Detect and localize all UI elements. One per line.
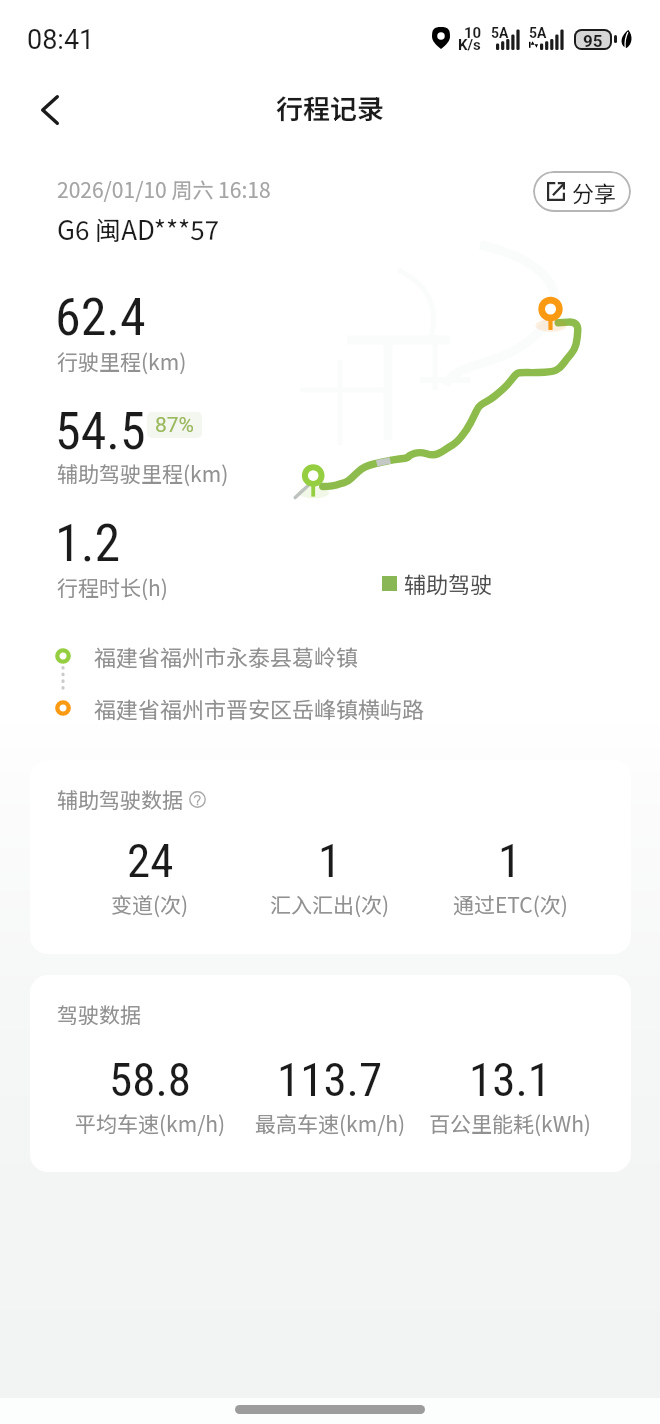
staticText: 58.8 — [109, 1052, 191, 1107]
staticText: 行驶里程(km) — [57, 346, 187, 376]
staticText: 福建省福州市晋安区岳峰镇横屿路 — [94, 692, 425, 723]
staticText: 分享 — [572, 176, 617, 208]
staticText: K/s — [458, 36, 481, 54]
staticText: 汇入汇出(次) — [270, 889, 390, 919]
staticText: 113.7 — [277, 1052, 383, 1107]
button[interactable]: 驾驶数据 — [30, 975, 631, 1172]
staticText: 5A — [491, 25, 509, 41]
button[interactable]: 福建省福州市晋安区岳峰镇横屿路 — [55, 692, 425, 723]
staticText: G6 闽AD***57 — [57, 210, 220, 248]
staticText: 54.5 — [55, 401, 146, 462]
button[interactable]: 辅助驾驶数据 — [30, 760, 631, 954]
staticText: 1 — [498, 833, 522, 888]
staticText: 行程记录 — [276, 88, 384, 127]
staticText: 95 — [583, 31, 603, 48]
staticText: 通过ETC(次) — [453, 889, 568, 919]
staticText: 24 — [127, 833, 174, 888]
staticText: 2026/01/10 周六 16:18 — [57, 174, 271, 204]
staticText: 驾驶数据 — [57, 999, 141, 1029]
staticText: 08:41 — [27, 24, 95, 56]
staticText: 百公里能耗(kWh) — [429, 1108, 591, 1138]
staticText: 87% — [155, 413, 194, 438]
staticText: 平均车速(km/h) — [75, 1108, 226, 1138]
staticText: 行程时长(h) — [57, 572, 168, 602]
staticText: 最高车速(km/h) — [255, 1108, 406, 1138]
staticText: 变道(次) — [111, 889, 189, 919]
staticText: 1 — [318, 833, 342, 888]
button[interactable]: 分享 — [533, 171, 631, 212]
staticText: 辅助驾驶里程(km) — [57, 458, 229, 488]
staticText: 5A — [529, 25, 547, 41]
staticText: 福建省福州市永泰县葛岭镇 — [94, 640, 359, 671]
staticText: 辅助驾驶 — [404, 567, 493, 599]
button[interactable]: Back — [20, 80, 80, 140]
button[interactable]: 福建省福州市永泰县葛岭镇 — [55, 640, 359, 671]
staticText: 62.4 — [55, 287, 146, 348]
staticText: 13.1 — [469, 1052, 551, 1107]
staticText: 10 — [464, 24, 482, 42]
staticText: 辅助驾驶数据 — [57, 784, 183, 814]
staticText: 1.2 — [55, 513, 121, 574]
